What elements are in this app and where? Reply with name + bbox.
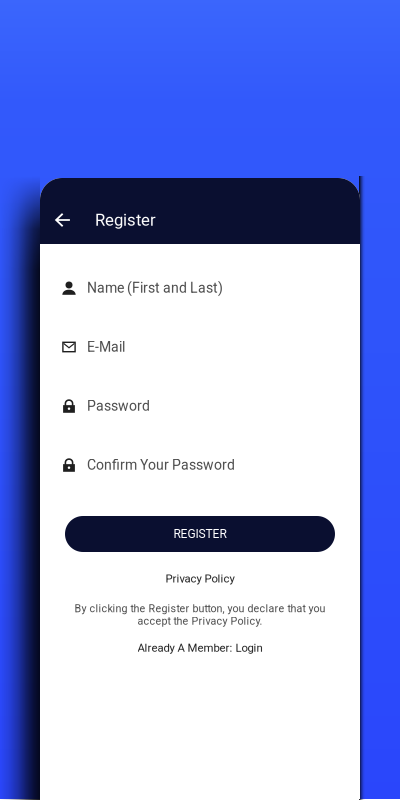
button[interactable]: Privacy Policy — [165, 572, 234, 585]
button[interactable]: Name (First and Last) — [62, 275, 338, 301]
staticText: Confirm Your Password — [87, 457, 235, 473]
button[interactable]: Back — [48, 205, 77, 235]
staticText: E-Mail — [87, 339, 125, 355]
button[interactable]: Confirm Your Password — [62, 452, 338, 478]
button[interactable]: REGISTER — [62, 516, 338, 552]
staticText: Password — [87, 398, 150, 414]
staticText: Register — [95, 210, 156, 230]
staticText: Privacy Policy — [165, 572, 234, 585]
staticText: REGISTER — [173, 527, 226, 541]
button[interactable]: Already A Member: Login — [137, 641, 262, 655]
staticText: Already A Member: Login — [137, 641, 262, 655]
staticText: accept the Privacy Policy. — [137, 615, 262, 627]
button[interactable]: Password — [62, 393, 338, 419]
button[interactable]: E-Mail — [62, 334, 338, 360]
staticText: Name (First and Last) — [87, 280, 223, 296]
staticText: By clicking the Register button, you dec… — [74, 602, 325, 615]
